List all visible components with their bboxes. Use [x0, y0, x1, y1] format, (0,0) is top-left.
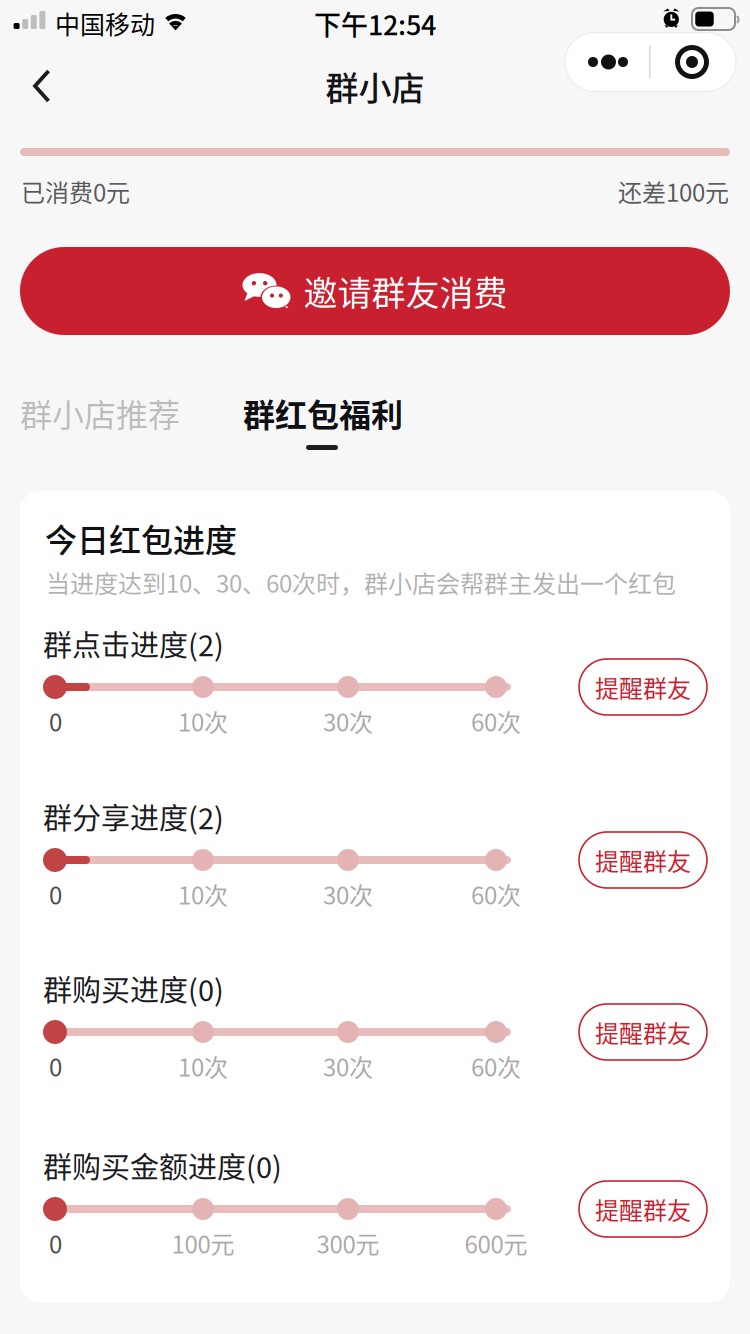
staticText: 邀请群友消费 — [303, 266, 507, 316]
staticText: 60次 — [471, 1049, 521, 1083]
staticText: 提醒群友 — [595, 1192, 691, 1226]
staticText: 群点击进度(2) — [43, 622, 224, 664]
staticText: 群分享进度(2) — [43, 795, 224, 837]
button[interactable]: 邀请群友消费 — [20, 247, 730, 335]
staticText: 群红包福利 — [243, 390, 403, 436]
button[interactable]: 提醒群友 — [579, 1181, 707, 1237]
staticText: 600元 — [464, 1226, 527, 1260]
staticText: 已消费0元 — [21, 174, 130, 209]
staticText: 100元 — [171, 1226, 234, 1260]
staticText: 下午12:54 — [314, 4, 436, 43]
staticText: 60次 — [471, 704, 521, 738]
button[interactable]: Back — [4, 42, 80, 130]
staticText: 群小店推荐 — [20, 390, 180, 436]
staticText: 10次 — [178, 1049, 228, 1083]
staticText: 提醒群友 — [595, 1015, 691, 1049]
staticText: 群购买金额进度(0) — [43, 1144, 282, 1186]
staticText: 中国移动 — [55, 5, 155, 41]
staticText: 0 — [49, 1049, 62, 1083]
staticText: 还差100元 — [618, 174, 729, 209]
staticText: 10次 — [178, 704, 228, 738]
staticText: 群小店 — [325, 62, 424, 110]
button[interactable]: 提醒群友 — [579, 659, 707, 715]
staticText: 当进度达到10、30、60次时，群小店会帮群主发出一个红包 — [46, 565, 676, 600]
staticText: 30次 — [323, 877, 373, 911]
button[interactable]: 群小店推荐 — [20, 390, 220, 436]
staticText: 今日红包进度 — [45, 515, 237, 561]
staticText: 10次 — [178, 877, 228, 911]
staticText: 提醒群友 — [595, 670, 691, 704]
staticText: 0 — [49, 877, 62, 911]
staticText: 60次 — [471, 877, 521, 911]
staticText: 0 — [49, 704, 62, 738]
staticText: 0 — [49, 1226, 62, 1260]
staticText: 提醒群友 — [595, 843, 691, 877]
staticText: 300元 — [316, 1226, 379, 1260]
button[interactable]: 提醒群友 — [579, 832, 707, 888]
staticText: 群购买进度(0) — [43, 967, 224, 1009]
button[interactable]: More options — [565, 18, 750, 106]
button[interactable]: 提醒群友 — [579, 1004, 707, 1060]
staticText: 30次 — [323, 704, 373, 738]
staticText: 30次 — [323, 1049, 373, 1083]
button[interactable]: 群红包福利 — [243, 390, 443, 462]
